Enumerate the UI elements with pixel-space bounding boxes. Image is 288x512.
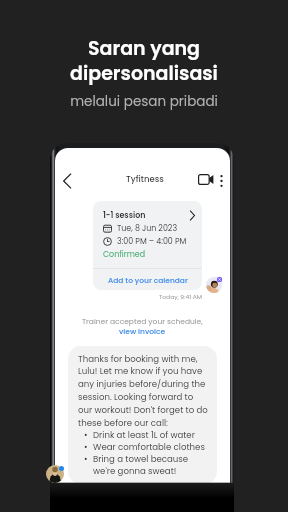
staticText: Wear comfortable clothes	[93, 441, 205, 453]
staticText: Trainer accepted your schedule,	[82, 316, 203, 326]
staticText: 1-1 session	[103, 210, 146, 221]
staticText: Confirmed	[103, 249, 146, 260]
staticText: 3:00 PM – 4:00 PM	[117, 236, 187, 247]
staticText: Today, 9:41 AM	[159, 293, 202, 301]
staticText: Thanks for booking with me, Lulu! Let me…	[78, 353, 208, 429]
button[interactable]: view invoice	[119, 326, 166, 336]
button[interactable]: More options	[213, 173, 229, 189]
staticText: •	[84, 453, 88, 465]
staticText: Saran yang dipersonalisasi	[70, 35, 218, 87]
staticText: melalui pesan pribadi	[70, 92, 218, 111]
staticText: Tyfitness	[126, 173, 164, 185]
staticText: view invoice	[119, 326, 166, 336]
staticText: Add to your calendar	[108, 275, 188, 285]
button[interactable]: Back	[59, 173, 75, 189]
staticText: Drink at least 1L of water	[93, 429, 195, 441]
staticText: Bring a towel because we're gonna sweat!	[93, 453, 189, 477]
staticText: •	[84, 429, 88, 441]
button[interactable]: Video call	[195, 168, 217, 190]
button[interactable]: Add to your calendar	[93, 269, 202, 290]
staticText: •	[84, 441, 88, 453]
staticText: Tue, 8 Jun 2023	[117, 223, 178, 234]
